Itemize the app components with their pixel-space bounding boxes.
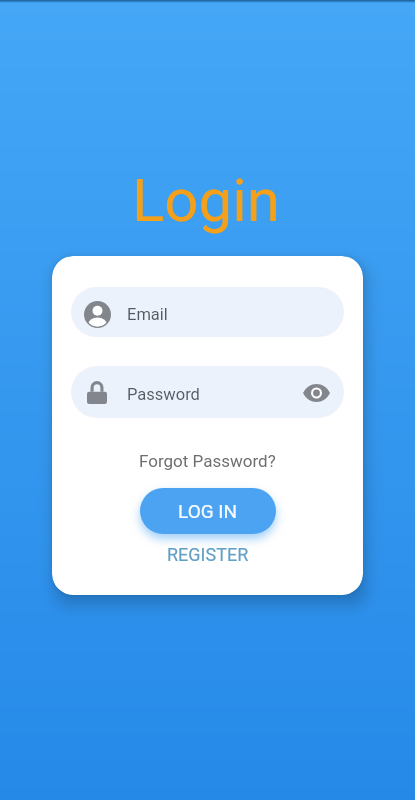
button[interactable]: REGISTER (159, 542, 257, 567)
button[interactable]: LOG IN (140, 488, 276, 534)
button[interactable]: Password (71, 366, 344, 418)
staticText: Email (127, 305, 168, 324)
button[interactable]: Show password (301, 377, 331, 407)
staticText: LOG IN (178, 500, 238, 522)
button[interactable]: Email (71, 287, 344, 337)
staticText: Password (127, 385, 200, 404)
staticText: Login (132, 165, 280, 235)
button[interactable]: Forgot Password? (133, 449, 282, 473)
